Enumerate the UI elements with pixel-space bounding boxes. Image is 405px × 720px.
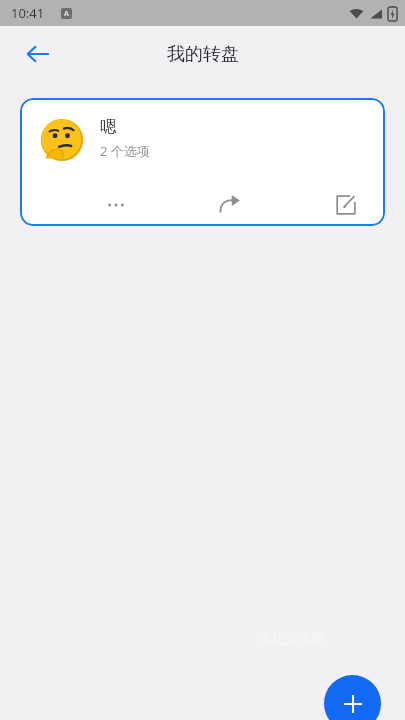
staticText: 我的转盘 xyxy=(167,43,239,66)
button[interactable]: More options xyxy=(98,187,134,223)
button[interactable]: Add wheel xyxy=(324,675,381,720)
staticText: 嗯 xyxy=(100,117,116,137)
button[interactable]: Share xyxy=(211,186,249,224)
staticText: A xyxy=(64,9,69,19)
staticText: 2 个选项 xyxy=(100,142,150,160)
button[interactable]: 嗯 xyxy=(20,98,385,226)
button[interactable]: Edit xyxy=(327,186,365,224)
button[interactable]: Back xyxy=(18,34,58,74)
staticText: 10:41 xyxy=(11,4,45,22)
